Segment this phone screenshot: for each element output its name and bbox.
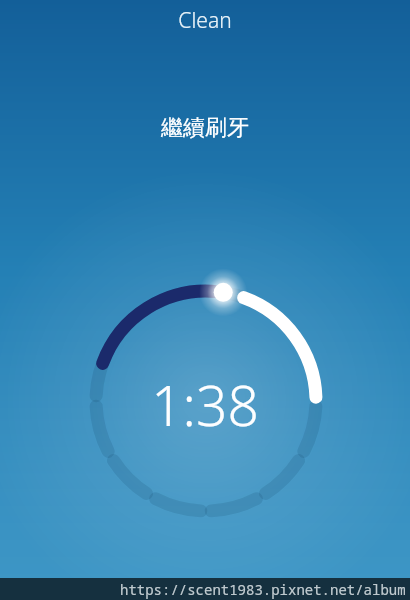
button[interactable]: Brushing timer xyxy=(0,0,410,600)
staticText: https://scent1983.pixnet.net/album xyxy=(120,580,406,599)
staticText: 繼續刷牙 xyxy=(161,114,249,142)
button[interactable]: Clean xyxy=(0,6,410,35)
staticText: Clean xyxy=(178,6,232,35)
staticText: 1:38 xyxy=(151,367,259,442)
